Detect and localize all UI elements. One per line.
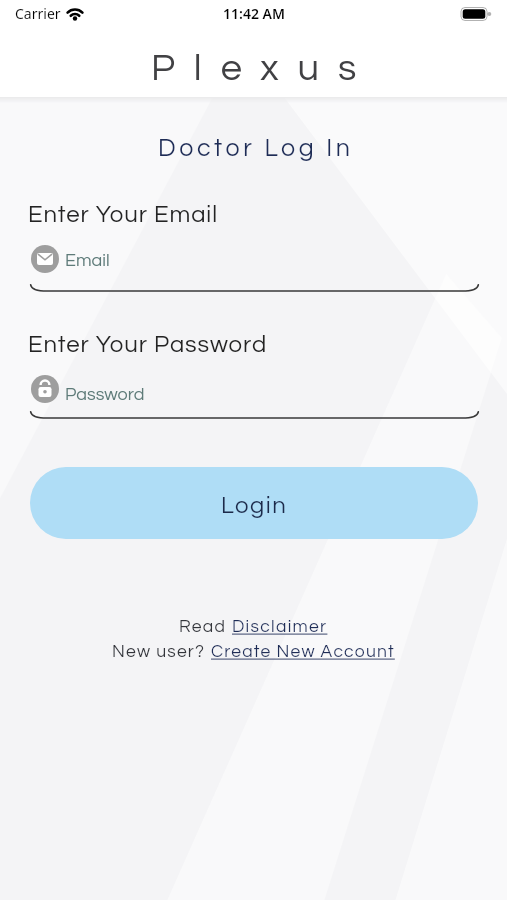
staticText: Carrier [15, 4, 61, 23]
button[interactable]: Password [30, 373, 479, 423]
staticText: 11:42 AM [223, 4, 285, 23]
staticText: New user? [112, 643, 211, 661]
staticText: Doctor Log In [158, 135, 354, 161]
staticText: Email [65, 251, 110, 270]
staticText: Plexus [151, 49, 376, 88]
staticText: Enter Your Email [28, 202, 218, 227]
button[interactable]: Email [30, 243, 479, 293]
button[interactable]: Disclaimer [232, 618, 328, 636]
staticText: Enter Your Password [28, 332, 268, 357]
staticText: Login [221, 493, 288, 518]
button[interactable]: Login [30, 467, 478, 539]
button[interactable]: Create New Account [211, 643, 395, 661]
staticText: Read [179, 618, 232, 636]
staticText: Password [65, 385, 145, 404]
